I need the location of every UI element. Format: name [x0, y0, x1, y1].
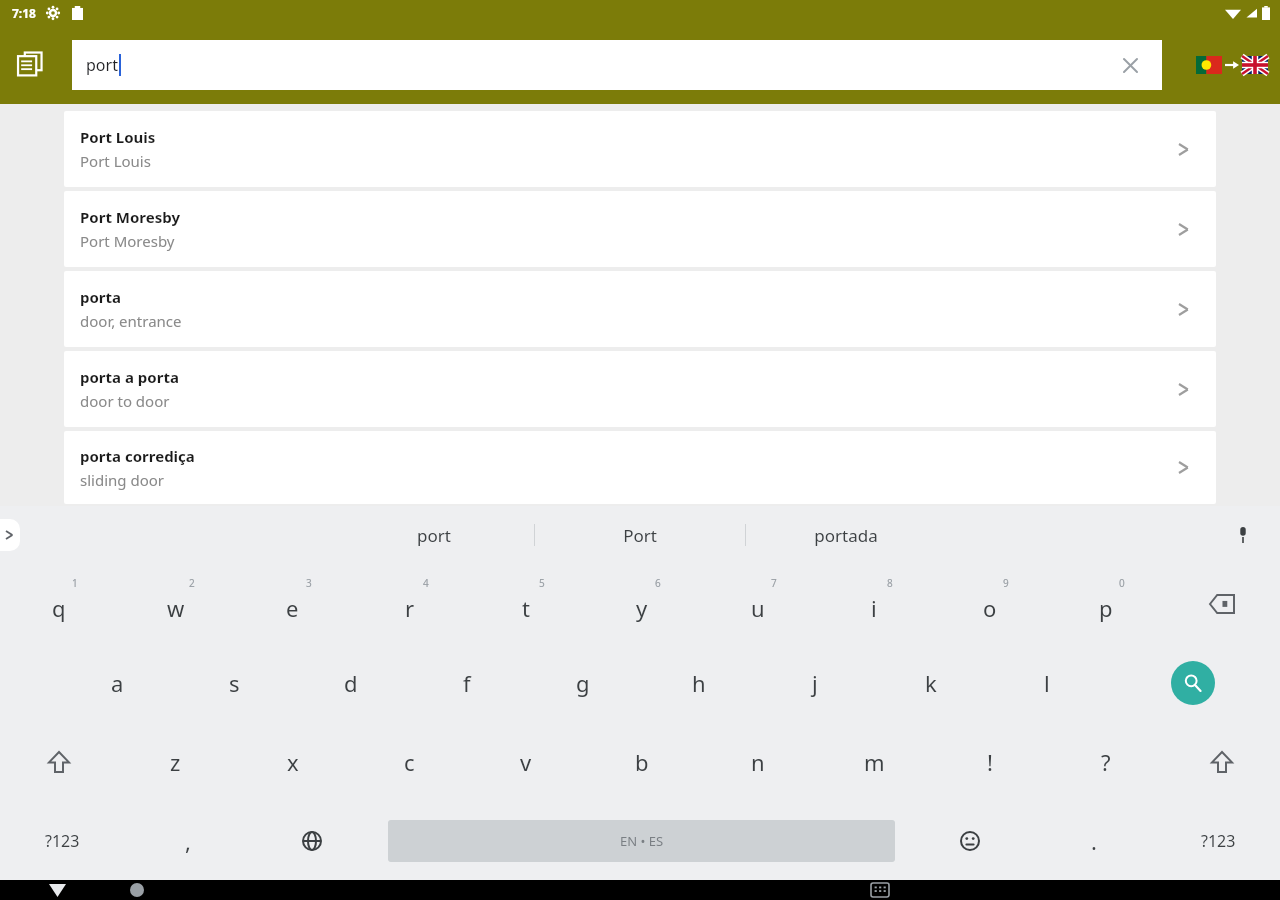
button[interactable]: 7 [700, 564, 816, 643]
staticText: port [86, 54, 118, 76]
staticText: i [871, 593, 877, 623]
button[interactable]: ! [932, 722, 1048, 801]
staticText: porta [80, 287, 122, 307]
staticText: Port Louis [80, 127, 156, 147]
button[interactable]: g [525, 643, 641, 722]
button[interactable]: Dictionaries [10, 45, 50, 85]
button[interactable]: Search [1105, 643, 1280, 722]
staticText: g [576, 668, 590, 698]
button[interactable]: 6 [584, 564, 700, 643]
button[interactable]: v [468, 722, 584, 801]
button[interactable]: 9 [932, 564, 1048, 643]
button[interactable]: 8 [816, 564, 932, 643]
staticText: ?123 [45, 830, 80, 852]
button[interactable]: porta a porta [64, 351, 1216, 427]
button[interactable]: Change language [250, 801, 374, 880]
staticText: porta a porta [80, 367, 179, 387]
button[interactable]: 1 [0, 564, 117, 643]
staticText: 4 [423, 576, 429, 590]
button[interactable]: d [293, 643, 409, 722]
staticText: door to door [80, 391, 170, 411]
button[interactable]: a [59, 643, 176, 722]
button[interactable]: b [584, 722, 700, 801]
button[interactable]: ?123 [1156, 801, 1280, 880]
button[interactable]: s [176, 643, 293, 722]
button[interactable]: Switch languages [1196, 56, 1268, 74]
button[interactable]: porta [64, 271, 1216, 347]
staticText: ! [987, 747, 993, 777]
staticText: 5 [539, 576, 545, 590]
button[interactable]: 4 [351, 564, 468, 643]
button[interactable]: Port [535, 513, 745, 557]
button[interactable]: ? [1048, 722, 1164, 801]
staticText: sliding door [80, 470, 164, 490]
staticText: q [52, 593, 66, 623]
button[interactable]: 0 [1048, 564, 1164, 643]
button[interactable]: Expand toolbar [0, 519, 20, 551]
button[interactable]: Backspace [1164, 564, 1280, 643]
button[interactable]: l [989, 643, 1105, 722]
staticText: h [692, 668, 706, 698]
button[interactable]: port [334, 513, 534, 557]
staticText: 3 [306, 576, 312, 590]
button[interactable]: Clear [1116, 51, 1144, 79]
staticText: 7:18 [12, 5, 36, 21]
button[interactable]: Voice input [1228, 520, 1258, 550]
staticText: a [111, 668, 124, 698]
button[interactable]: h [641, 643, 757, 722]
staticText: 0 [1119, 576, 1125, 590]
button[interactable]: Shift [1164, 722, 1280, 801]
button[interactable]: ?123 [0, 801, 125, 880]
staticText: j [812, 668, 818, 698]
staticText: ? [1101, 747, 1111, 777]
button[interactable]: x [234, 722, 351, 801]
staticText: ?123 [1201, 830, 1236, 852]
button[interactable]: m [816, 722, 932, 801]
button[interactable]: 5 [468, 564, 584, 643]
staticText: s [229, 668, 240, 698]
staticText: r [405, 593, 415, 623]
button[interactable]: 3 [234, 564, 351, 643]
button[interactable]: EN • ES [374, 801, 908, 880]
staticText: 6 [655, 576, 661, 590]
staticText: 1 [72, 576, 78, 590]
staticText: portada [814, 524, 878, 547]
button[interactable]: portada [746, 513, 946, 557]
button[interactable]: c [351, 722, 468, 801]
button[interactable]: Port Moresby [64, 191, 1216, 267]
staticText: f [463, 668, 471, 698]
staticText: x [287, 747, 299, 777]
staticText: m [864, 747, 885, 777]
button[interactable]: Hide keyboard [863, 880, 897, 900]
staticText: t [522, 593, 530, 623]
button[interactable]: Emoji [908, 801, 1032, 880]
staticText: 7 [771, 576, 777, 590]
button[interactable]: z [117, 722, 234, 801]
staticText: c [404, 747, 415, 777]
staticText: p [1099, 593, 1113, 623]
button[interactable]: n [700, 722, 816, 801]
staticText: v [520, 747, 532, 777]
staticText: k [925, 668, 937, 698]
button[interactable]: Shift [0, 722, 117, 801]
staticText: l [1044, 668, 1050, 698]
staticText: Port Louis [80, 151, 151, 171]
button[interactable]: port [72, 40, 1162, 90]
button[interactable]: Home [120, 880, 154, 900]
button[interactable]: , [125, 801, 250, 880]
button[interactable]: Port Louis [64, 111, 1216, 187]
button[interactable]: k [873, 643, 989, 722]
staticText: y [636, 593, 648, 623]
staticText: z [170, 747, 181, 777]
staticText: b [635, 747, 649, 777]
button[interactable]: Back [40, 880, 74, 900]
staticText: d [344, 668, 358, 698]
button[interactable]: 2 [117, 564, 234, 643]
button[interactable]: . [1032, 801, 1156, 880]
button[interactable]: j [757, 643, 873, 722]
button[interactable]: porta corrediça [64, 431, 1216, 504]
button[interactable]: f [409, 643, 525, 722]
staticText: Port [623, 524, 657, 547]
staticText: Port Moresby [80, 231, 175, 251]
staticText: , [185, 826, 191, 856]
